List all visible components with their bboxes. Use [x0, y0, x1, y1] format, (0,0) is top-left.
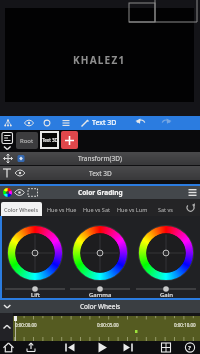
staticText: Text 3D [42, 137, 58, 143]
button[interactable]: Root [16, 132, 38, 149]
button[interactable]: Hue vs Sat [81, 202, 112, 216]
button[interactable]: Color Grading [0, 186, 200, 199]
staticText: Root [20, 137, 34, 145]
button[interactable]: Text 3D [92, 118, 117, 128]
staticText: 0:00:00.00 [15, 322, 37, 328]
button[interactable]: Hue vs Lum [116, 202, 149, 216]
staticText: 0:00:05.00 [97, 322, 119, 328]
staticText: Text 3D [92, 118, 117, 128]
staticText: 0:00:10.00 [174, 322, 196, 328]
staticText: Gain [160, 291, 173, 299]
staticText: Color Wheels [80, 302, 121, 311]
staticText: Transform(3D) [78, 154, 122, 163]
staticText: Color Grading [78, 188, 123, 197]
button[interactable]: Sat vs [152, 202, 178, 216]
button[interactable]: Color Wheels [0, 300, 200, 313]
button[interactable]: Text 3D [0, 166, 200, 180]
staticText: Lift [31, 291, 40, 299]
staticText: Hue vs Lum [117, 206, 148, 213]
staticText: Color Wheels [4, 206, 39, 213]
button[interactable]: Text 3D [40, 131, 59, 149]
staticText: ? [188, 344, 191, 352]
staticText: Gamma [89, 291, 112, 299]
staticText: Text 3D [89, 169, 112, 178]
staticText: KHALEZ1 [73, 53, 126, 67]
button[interactable]: Color Wheels [1, 202, 42, 216]
staticText: Hue vs Sat [83, 206, 110, 213]
button[interactable]: Transform(3D) [0, 152, 200, 165]
button[interactable] [61, 131, 78, 149]
staticText: Sat vs [158, 206, 173, 213]
staticText: Hue vs Hue [47, 206, 77, 213]
button[interactable]: Hue vs Hue [46, 202, 77, 216]
